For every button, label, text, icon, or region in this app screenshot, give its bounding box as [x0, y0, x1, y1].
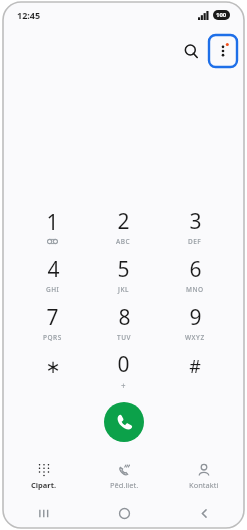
staticText: MNO: [186, 285, 204, 294]
button[interactable]: Call: [104, 402, 144, 442]
staticText: #: [189, 354, 201, 379]
button[interactable]: Home: [84, 498, 164, 528]
button[interactable]: Back: [164, 498, 244, 528]
button[interactable]: 7: [17, 298, 88, 346]
staticText: 3: [189, 207, 202, 236]
staticText: 9: [189, 303, 202, 332]
staticText: 5: [117, 255, 130, 284]
button[interactable]: Cipart.: [3, 454, 84, 498]
staticText: 6: [189, 255, 202, 284]
staticText: ∗: [45, 356, 61, 377]
button[interactable]: 5: [88, 250, 159, 298]
staticText: GHI: [46, 285, 60, 294]
staticText: ABC: [116, 237, 131, 246]
staticText: Pēd.liet.: [110, 480, 139, 490]
button[interactable]: ∗: [17, 346, 88, 394]
button[interactable]: 1: [17, 202, 88, 250]
staticText: WXYZ: [185, 333, 205, 342]
button[interactable]: 9: [159, 298, 230, 346]
button[interactable]: More options: [208, 34, 238, 68]
button[interactable]: 8: [88, 298, 159, 346]
staticText: +: [121, 380, 126, 391]
staticText: 4: [47, 255, 60, 284]
button[interactable]: Recents: [3, 498, 84, 528]
button[interactable]: Pēd.liet.: [84, 454, 164, 498]
staticText: 1: [46, 208, 59, 237]
button[interactable]: 6: [159, 250, 230, 298]
staticText: 7: [46, 303, 59, 332]
button[interactable]: #: [159, 346, 230, 394]
button[interactable]: 4: [17, 250, 88, 298]
button[interactable]: 0: [88, 346, 159, 394]
button[interactable]: 2: [88, 202, 159, 250]
staticText: 0: [117, 350, 130, 379]
staticText: PQRS: [43, 333, 62, 342]
staticText: 100: [216, 11, 227, 19]
staticText: JKL: [118, 285, 129, 294]
staticText: 2: [117, 207, 130, 236]
staticText: DEF: [188, 237, 202, 246]
staticText: 12:45: [17, 9, 41, 21]
staticText: Kontakti: [189, 480, 219, 490]
staticText: Cipart.: [31, 480, 57, 490]
button[interactable]: Kontakti: [164, 454, 244, 498]
staticText: TUV: [117, 333, 131, 342]
staticText: 8: [118, 303, 131, 332]
button[interactable]: Search: [176, 36, 206, 66]
button[interactable]: 3: [159, 202, 230, 250]
